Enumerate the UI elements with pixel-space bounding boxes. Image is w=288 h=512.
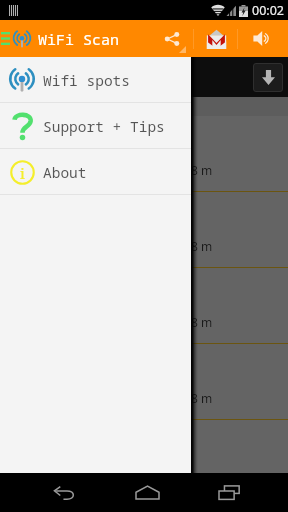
button[interactable]: Open navigation drawer: [0, 20, 14, 57]
staticText: 8 m: [191, 238, 213, 254]
staticText: 00:02: [252, 2, 284, 19]
button[interactable]: Sound: [238, 20, 288, 57]
button[interactable]: i: [0, 149, 191, 194]
button[interactable]: Email: [194, 20, 238, 57]
button[interactable]: Recent apps: [188, 473, 270, 512]
button[interactable]: [0, 420, 288, 496]
staticText: Support + Tips: [43, 116, 165, 136]
button[interactable]: Home: [106, 473, 188, 512]
staticText: 8 m: [191, 390, 213, 406]
button[interactable]: 8 m: [0, 116, 288, 192]
button[interactable]: Share: [150, 20, 194, 57]
staticText: 8 m: [191, 162, 213, 178]
staticText: WiFi Scan: [38, 29, 120, 49]
button[interactable]: 8 m: [0, 344, 288, 420]
button[interactable]: Support + Tips: [0, 103, 191, 148]
staticText: About: [43, 162, 87, 182]
button[interactable]: 8 m: [0, 268, 288, 344]
staticText: Wifi spots: [43, 70, 130, 90]
staticText: 8 m: [191, 314, 213, 330]
button[interactable]: Back: [23, 473, 105, 512]
button[interactable]: Download: [253, 63, 283, 92]
button[interactable]: Wifi spots: [0, 57, 191, 102]
staticText: i: [20, 163, 25, 183]
button[interactable]: 8 m: [0, 192, 288, 268]
